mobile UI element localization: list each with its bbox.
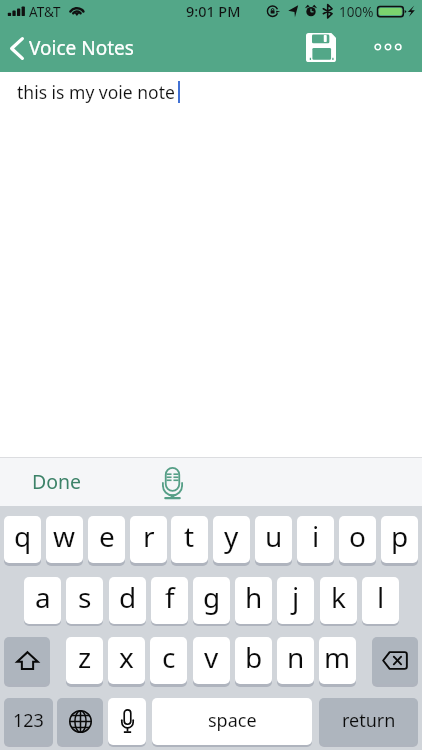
staticText: n — [287, 638, 305, 676]
button[interactable]: Numbers — [4, 698, 53, 745]
button[interactable]: n — [277, 637, 314, 684]
staticText: o — [349, 517, 366, 555]
button[interactable]: d — [109, 577, 146, 624]
staticText: i — [312, 517, 320, 555]
staticText: p — [391, 517, 409, 555]
staticText: y — [224, 517, 239, 555]
button[interactable]: Dictate — [108, 698, 146, 745]
staticText: d — [119, 578, 137, 616]
staticText: s — [78, 578, 92, 616]
button[interactable]: e — [88, 516, 125, 563]
staticText: l — [377, 578, 385, 616]
staticText: q — [14, 517, 32, 555]
staticText: 123 — [13, 708, 44, 733]
button[interactable]: b — [235, 637, 272, 684]
staticText: 9:01 PM — [186, 2, 241, 22]
staticText: a — [35, 578, 51, 616]
button[interactable]: m — [319, 637, 356, 684]
button[interactable]: f — [151, 577, 188, 624]
button[interactable]: w — [46, 516, 83, 563]
button[interactable]: space — [152, 698, 312, 745]
staticText: r — [143, 517, 155, 555]
button[interactable]: Shift — [4, 637, 50, 684]
button[interactable]: More options — [367, 24, 409, 72]
button[interactable]: p — [381, 516, 418, 563]
button[interactable]: t — [171, 516, 208, 563]
staticText: g — [203, 578, 221, 616]
button[interactable]: k — [320, 577, 357, 624]
staticText: m — [324, 638, 351, 676]
staticText: Voice Notes — [29, 35, 134, 61]
staticText: t — [184, 517, 195, 555]
staticText: c — [162, 638, 176, 676]
staticText: this is my voie note — [17, 80, 175, 104]
staticText: v — [204, 638, 219, 676]
staticText: e — [99, 517, 115, 555]
button[interactable]: r — [130, 516, 167, 563]
button[interactable]: z — [66, 637, 103, 684]
staticText: j — [292, 578, 300, 616]
button[interactable]: q — [4, 516, 41, 563]
staticText: AT&T — [29, 3, 61, 21]
button[interactable]: Record voice note — [152, 457, 193, 506]
staticText: u — [265, 517, 283, 555]
button[interactable]: Save — [293, 24, 349, 72]
button[interactable]: y — [213, 516, 250, 563]
button[interactable]: j — [277, 577, 314, 624]
button[interactable]: u — [255, 516, 292, 563]
button[interactable]: l — [362, 577, 399, 624]
button[interactable]: x — [108, 637, 145, 684]
staticText: Done — [32, 468, 82, 495]
button[interactable]: Switch keyboard — [57, 698, 103, 745]
button[interactable]: i — [297, 516, 334, 563]
button[interactable]: o — [339, 516, 376, 563]
staticText: z — [78, 638, 92, 676]
button[interactable]: a — [24, 577, 61, 624]
button[interactable]: s — [66, 577, 103, 624]
staticText: h — [245, 578, 263, 616]
button[interactable]: Backspace — [372, 637, 418, 684]
staticText: w — [53, 517, 76, 555]
staticText: return — [342, 708, 396, 733]
staticText: space — [208, 708, 257, 733]
staticText: f — [165, 578, 175, 616]
staticText: 100% — [339, 3, 374, 21]
button[interactable]: Voice Notes — [0, 24, 145, 72]
staticText: k — [331, 578, 346, 616]
button[interactable]: g — [193, 577, 230, 624]
staticText: b — [245, 638, 263, 676]
staticText: x — [119, 638, 134, 676]
button[interactable]: c — [150, 637, 187, 684]
button[interactable]: return — [319, 698, 418, 745]
button[interactable]: v — [193, 637, 230, 684]
button[interactable]: h — [235, 577, 272, 624]
button[interactable]: Done — [18, 457, 96, 506]
